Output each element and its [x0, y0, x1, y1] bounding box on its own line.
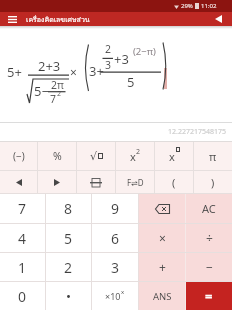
staticText: ( — [172, 175, 176, 190]
button[interactable] — [139, 194, 185, 223]
button[interactable]: × — [139, 224, 185, 252]
staticText: 9 — [111, 199, 120, 218]
staticText: +3 — [114, 50, 129, 68]
staticText: 4 — [18, 229, 27, 248]
staticText: 1 — [18, 258, 27, 277]
staticText: = — [205, 287, 213, 305]
staticText: 8 — [64, 199, 73, 218]
staticText: % — [53, 149, 62, 163]
staticText: ANS — [153, 290, 172, 303]
staticText: F⇌D — [127, 177, 144, 188]
staticText: 3 — [111, 258, 120, 277]
staticText: x — [121, 288, 125, 296]
staticText: x — [169, 149, 175, 164]
staticText: 7 — [18, 199, 27, 218]
staticText: 11:02 — [201, 2, 217, 10]
staticText: (2−π) — [133, 45, 156, 58]
button[interactable]: % — [38, 142, 76, 170]
staticText: 2 — [57, 89, 62, 99]
button[interactable]: ( — [155, 171, 193, 193]
staticText: 5− — [34, 82, 49, 100]
staticText: × — [70, 64, 77, 80]
button[interactable]: (−) — [0, 142, 37, 170]
button[interactable]: x — [116, 142, 154, 170]
staticText: ) — [211, 175, 215, 190]
staticText: 2 — [105, 42, 112, 56]
staticText: เครื่องคิดเลขเศษส่วน — [26, 14, 90, 25]
staticText: AC — [202, 201, 216, 216]
button[interactable]: 6 — [92, 224, 138, 252]
button[interactable] — [214, 15, 222, 23]
button[interactable]: 5 — [46, 224, 91, 252]
button[interactable]: x — [155, 142, 193, 170]
staticText: 12.227217548175 — [168, 127, 226, 137]
staticText: × — [159, 230, 166, 246]
button[interactable]: 3 — [92, 253, 138, 281]
staticText: ÷ — [206, 230, 213, 246]
staticText: 29% — [181, 2, 193, 10]
staticText: + — [159, 259, 166, 275]
button[interactable] — [7, 15, 17, 23]
button[interactable]: √ — [77, 142, 115, 170]
button[interactable]: F⇌D — [116, 171, 154, 193]
staticText: 2π — [51, 78, 64, 92]
staticText: 2+3 — [38, 57, 61, 75]
staticText: 2 — [136, 147, 141, 157]
button[interactable]: ÷ — [186, 224, 232, 252]
staticText: (−) — [13, 149, 25, 163]
button[interactable]: 9 — [92, 194, 138, 223]
button[interactable]: 1 — [0, 253, 45, 281]
staticText: ×10 — [105, 290, 121, 302]
staticText: 6 — [111, 229, 120, 248]
button[interactable] — [0, 171, 37, 193]
button[interactable]: + — [139, 253, 185, 281]
button[interactable] — [77, 171, 115, 193]
staticText: 5+ — [7, 63, 22, 81]
staticText: π — [209, 149, 217, 164]
staticText: 0 — [18, 287, 27, 306]
button[interactable]: 4 — [0, 224, 45, 252]
staticText: 3 — [105, 58, 112, 72]
staticText: 5 — [64, 229, 73, 248]
staticText: − — [206, 259, 213, 275]
button[interactable]: π — [194, 142, 232, 170]
button[interactable] — [46, 282, 91, 310]
staticText: x — [130, 149, 136, 164]
button[interactable]: ) — [194, 171, 232, 193]
button[interactable]: AC — [186, 194, 232, 223]
button[interactable]: ×10 — [92, 282, 138, 310]
button[interactable]: ANS — [139, 282, 185, 310]
button[interactable]: = — [186, 282, 232, 310]
staticText: √ — [90, 150, 98, 163]
staticText: 5 — [127, 73, 135, 91]
button[interactable]: − — [186, 253, 232, 281]
button[interactable]: 0 — [0, 282, 45, 310]
button[interactable]: 8 — [46, 194, 91, 223]
button[interactable]: 2 — [46, 253, 91, 281]
staticText: 7 — [50, 92, 57, 106]
button[interactable]: 7 — [0, 194, 45, 223]
staticText: 3+ — [89, 62, 104, 80]
staticText: 2 — [64, 258, 73, 277]
button[interactable] — [38, 171, 76, 193]
